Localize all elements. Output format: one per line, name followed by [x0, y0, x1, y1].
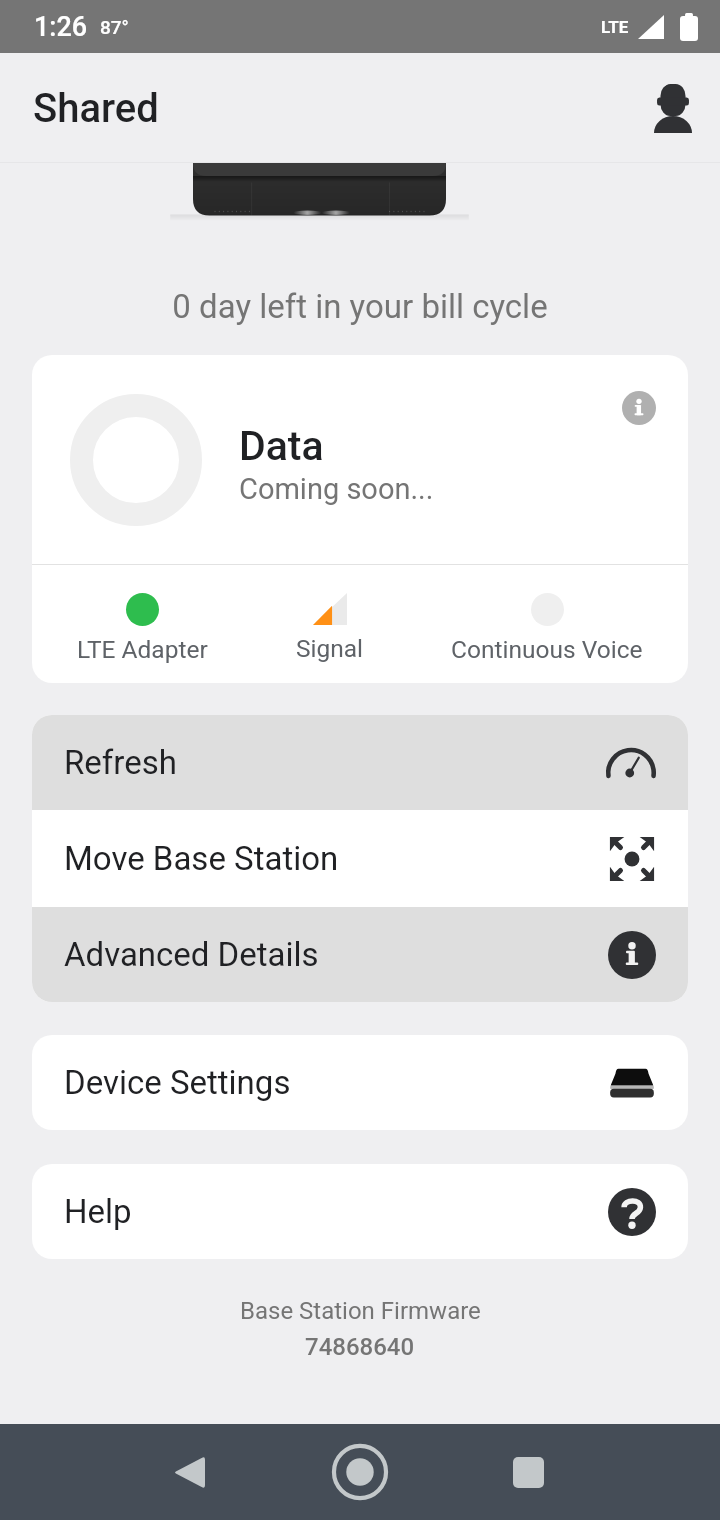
staticText: Advanced Details — [64, 935, 319, 974]
staticText: Base Station Firmware — [240, 1297, 481, 1325]
staticText: Move Base Station — [64, 839, 339, 878]
staticText: Signal — [296, 634, 364, 663]
button[interactable]: Signal — [296, 589, 364, 659]
button[interactable]: Info — [622, 391, 656, 425]
button[interactable]: Home — [313, 1425, 407, 1519]
staticText: LTE — [601, 17, 629, 37]
staticText: Coming soon... — [239, 472, 434, 506]
staticText: Refresh — [64, 743, 177, 782]
staticText: Device Settings — [64, 1063, 291, 1102]
staticText: 1:26 — [34, 11, 88, 43]
button[interactable]: Move Base Station — [32, 810, 688, 907]
staticText: Shared — [33, 85, 159, 132]
staticText: Help — [64, 1192, 132, 1231]
button[interactable]: Back — [142, 1425, 236, 1519]
staticText: 0 day left in your bill cycle — [0, 287, 720, 326]
button[interactable]: LTE Adapter — [77, 589, 208, 660]
staticText: 74868640 — [305, 1333, 415, 1361]
staticText: 87° — [100, 16, 129, 38]
staticText: Data — [239, 422, 324, 470]
button[interactable]: Device Settings — [32, 1035, 688, 1130]
button[interactable]: Advanced Details — [32, 907, 688, 1002]
button[interactable]: Continuous Voice — [451, 589, 643, 660]
button[interactable]: Account — [642, 77, 704, 139]
button[interactable]: Recents — [481, 1425, 575, 1519]
staticText: Continuous Voice — [451, 635, 643, 664]
staticText: LTE Adapter — [77, 635, 208, 664]
button[interactable]: Refresh — [32, 715, 688, 810]
button[interactable]: Help — [32, 1164, 688, 1259]
